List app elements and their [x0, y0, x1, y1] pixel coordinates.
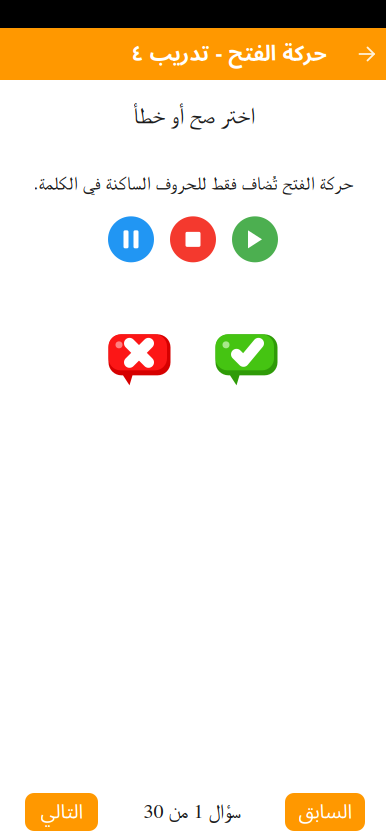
button[interactable]: Pause: [108, 216, 154, 262]
staticText: التالي: [40, 791, 83, 833]
button[interactable]: Next: [350, 28, 384, 80]
staticText: اختر صح أو خطأ: [132, 105, 253, 128]
staticText: سؤال 1 من 30: [143, 802, 240, 822]
button[interactable]: السابق: [285, 793, 365, 831]
button[interactable]: False: [108, 334, 170, 385]
staticText: السابق: [298, 791, 352, 833]
staticText: حركة الفتح تُضاف فقط للحروف الساكنة في ا…: [33, 175, 353, 193]
button[interactable]: Play: [232, 216, 278, 262]
button[interactable]: Stop: [170, 216, 216, 262]
staticText: حركة الفتح - تدريب ٤: [131, 31, 326, 77]
button[interactable]: True: [215, 334, 277, 385]
button[interactable]: التالي: [25, 793, 98, 831]
